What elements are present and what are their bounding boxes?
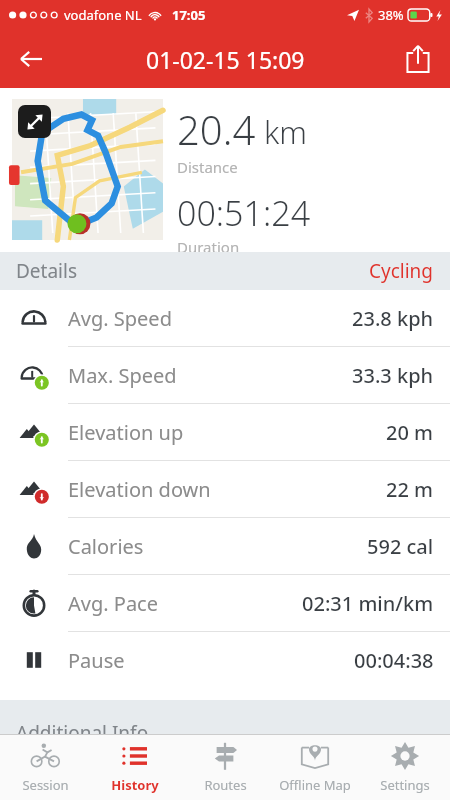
staticText: Settings — [380, 776, 430, 794]
staticText: Elevation up — [68, 419, 184, 446]
button[interactable]: Pause — [0, 632, 450, 688]
staticText: 02:31 min/km — [302, 590, 434, 617]
button[interactable]: Settings — [360, 735, 450, 800]
staticText: Cycling — [369, 258, 434, 284]
staticText: History — [111, 776, 159, 794]
staticText: Duration — [177, 237, 240, 252]
staticText: 20.4 — [177, 102, 256, 156]
staticText: Routes — [204, 776, 247, 794]
button[interactable]: Elevation down — [0, 461, 450, 517]
staticText: Calories — [68, 533, 144, 560]
staticText: Additional Info — [16, 720, 149, 746]
staticText: 33.3 kph — [352, 362, 434, 389]
staticText: km — [264, 111, 307, 153]
staticText: 20 m — [386, 419, 434, 446]
button[interactable]: History — [90, 735, 180, 800]
staticText: 00:51:24 — [177, 190, 311, 236]
button[interactable]: Max. Speed — [0, 347, 450, 403]
staticText: Session — [22, 776, 69, 794]
staticText: Max. Speed — [68, 362, 177, 389]
button[interactable]: Back — [8, 36, 54, 82]
staticText: Avg. Pace — [68, 590, 158, 617]
staticText: 17:05 — [172, 6, 206, 24]
button[interactable]: Additional Info — [0, 700, 450, 734]
button[interactable]: Offline Map — [270, 735, 360, 800]
staticText: 00:04:38 — [354, 647, 434, 674]
staticText: Distance — [177, 157, 238, 177]
staticText: 23.8 kph — [352, 305, 434, 332]
button[interactable]: Elevation up — [0, 404, 450, 460]
button[interactable]: Map — [12, 99, 163, 240]
staticText: Elevation down — [68, 476, 211, 503]
button[interactable]: Avg. Pace — [0, 575, 450, 631]
staticText: 01-02-15 15:09 — [146, 44, 305, 75]
staticText: Details — [16, 258, 78, 284]
button[interactable]: Routes — [180, 735, 270, 800]
staticText: vodafone NL — [64, 6, 142, 24]
staticText: Offline Map — [279, 776, 351, 794]
staticText: 38% — [378, 6, 404, 24]
staticText: 592 cal — [367, 533, 434, 560]
staticText: 22 m — [386, 476, 434, 503]
button[interactable]: Calories — [0, 518, 450, 574]
button[interactable]: Avg. Speed — [0, 290, 450, 346]
staticText: Pause — [68, 647, 125, 674]
staticText: Avg. Speed — [68, 305, 172, 332]
button[interactable]: Share — [394, 35, 442, 83]
button[interactable]: Session — [0, 735, 90, 800]
